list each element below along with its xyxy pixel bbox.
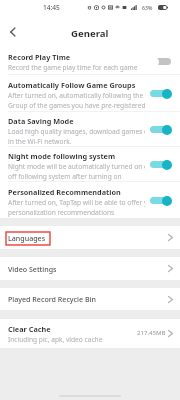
staticText: in the Wi-Fi network. [8, 137, 72, 146]
staticText: Data Saving Mode [8, 116, 74, 126]
staticText: 63% [142, 4, 153, 11]
staticText: General [71, 27, 109, 40]
button[interactable]: Automatically Follow Game Groups [0, 75, 180, 112]
staticText: Record the game play time for each game [8, 63, 138, 72]
button[interactable]: Video Settings [0, 257, 180, 280]
button[interactable]: Languages [0, 226, 180, 249]
staticText: Languages [8, 233, 46, 243]
staticText: Night mode will be automatically turned … [8, 162, 145, 171]
button[interactable]: Back [0, 20, 26, 44]
staticText: Automatically Follow Game Groups [8, 80, 136, 90]
staticText: Personalized Recommendation [8, 187, 121, 197]
staticText: Video Settings [8, 264, 57, 274]
staticText: Group of the games you have pre-register… [8, 101, 145, 110]
staticText: Load high quality images, download games… [8, 127, 145, 136]
staticText: personalization recommendations [8, 208, 115, 217]
staticText: Played Record Recycle Bin [8, 294, 96, 304]
staticText: Record Play Time [8, 52, 71, 62]
staticText: Clear Cache [8, 324, 51, 334]
button[interactable]: Clear Cache [0, 319, 180, 348]
button[interactable]: Played Record Recycle Bin [0, 288, 180, 310]
staticText: Including pic, apk, video cache [8, 335, 103, 344]
staticText: After turned on, TapTap will be able to … [8, 198, 145, 207]
button[interactable]: Record Play Time [0, 44, 180, 75]
button[interactable]: Personalized Recommendation [0, 182, 180, 218]
staticText: 14:45 [43, 3, 60, 12]
button[interactable]: Night mode following system [0, 147, 180, 182]
staticText: After turned on, automatically following… [8, 91, 144, 100]
button[interactable]: Data Saving Mode [0, 112, 180, 147]
staticText: 217.45MB [137, 328, 166, 336]
staticText: Night mode following system [8, 151, 116, 161]
staticText: off following system after turning on [8, 172, 122, 181]
